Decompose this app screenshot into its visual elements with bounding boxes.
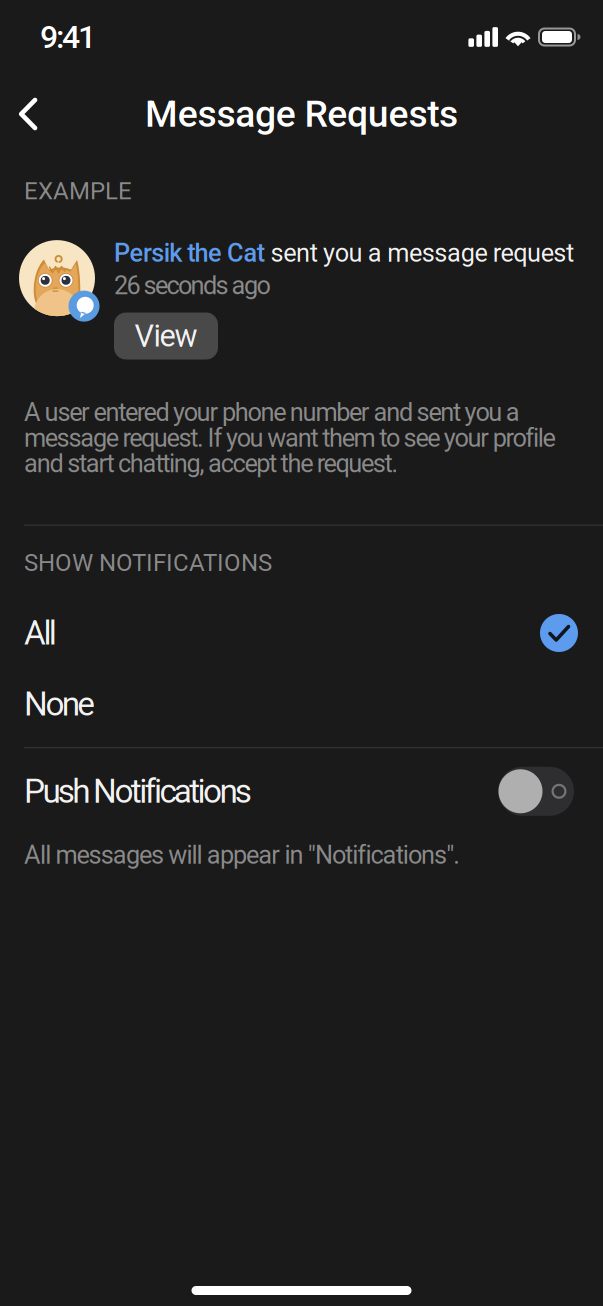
staticText: 26 seconds ago [114, 271, 270, 300]
staticText: View [134, 318, 197, 354]
staticText: Push Notifications [24, 772, 252, 811]
staticText: All [24, 613, 57, 653]
staticText: SHOW NOTIFICATIONS [24, 549, 272, 577]
staticText: Persik the Cat [114, 238, 265, 268]
staticText: None [24, 684, 95, 724]
button[interactable]: Push Notifications [0, 748, 603, 834]
button[interactable]: Back [1, 87, 55, 141]
staticText: EXAMPLE [24, 177, 132, 205]
staticText: All messages will appear in "Notificatio… [24, 840, 460, 870]
staticText: A user entered your phone number and sen… [24, 397, 556, 479]
button[interactable]: View [114, 312, 218, 359]
staticText: 9:41 [40, 18, 96, 56]
button[interactable]: All [0, 597, 603, 669]
staticText: Message Requests [145, 92, 458, 136]
staticText: sent you a message request [265, 238, 574, 268]
button[interactable]: None [0, 669, 603, 739]
